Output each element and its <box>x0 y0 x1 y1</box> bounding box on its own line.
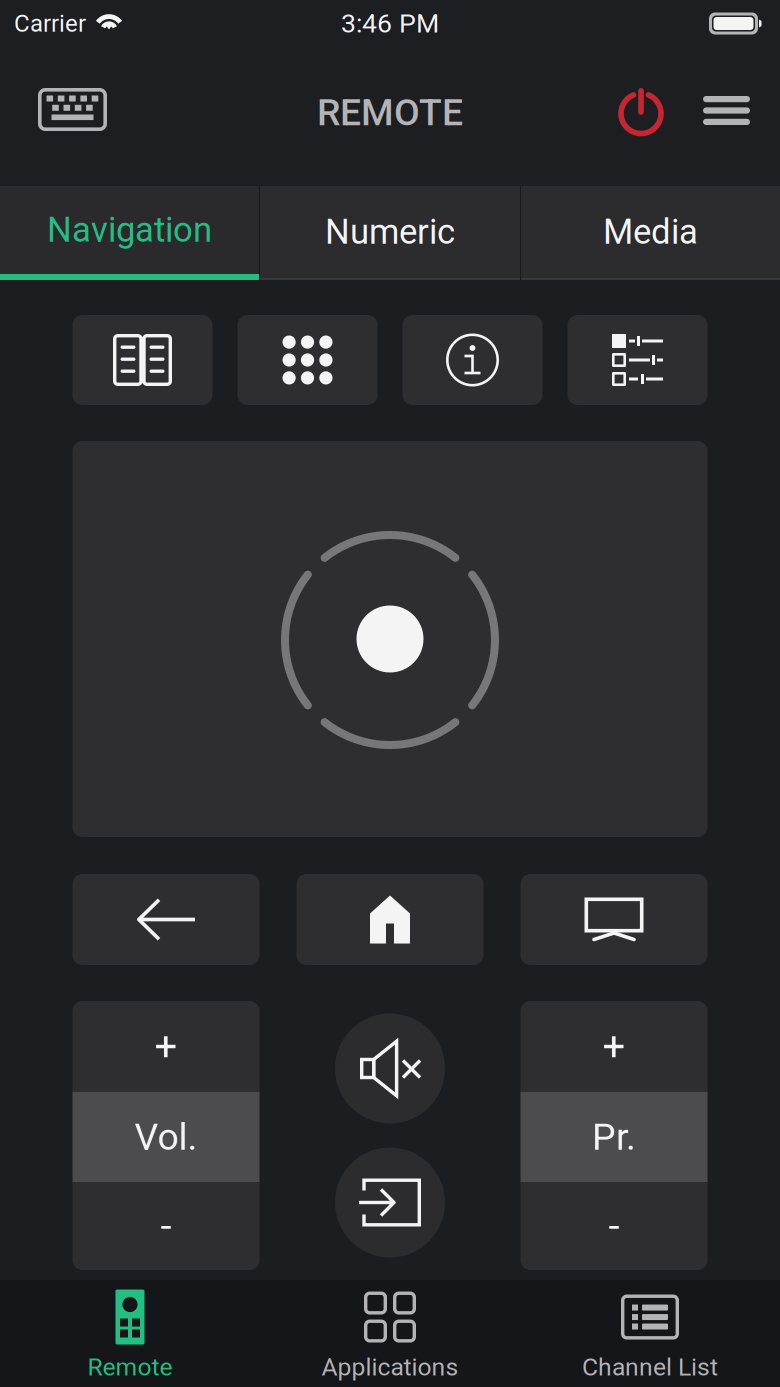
staticText: 3:46 PM <box>341 8 439 39</box>
button[interactable]: Source input <box>335 1147 445 1257</box>
staticText: - <box>608 1203 619 1249</box>
staticText: REMOTE <box>317 91 463 134</box>
staticText: Applications <box>321 1352 458 1381</box>
button[interactable]: - <box>72 1182 259 1270</box>
button[interactable]: Options <box>567 315 707 405</box>
button[interactable]: Home <box>296 874 483 965</box>
button[interactable]: - <box>520 1182 707 1270</box>
button[interactable]: Source <box>520 874 707 965</box>
button[interactable]: Info <box>402 315 542 405</box>
staticText: Pr. <box>592 1115 636 1159</box>
button[interactable]: + <box>72 1001 259 1092</box>
staticText: Channel List <box>582 1352 718 1381</box>
button[interactable]: Guide <box>72 315 212 405</box>
button[interactable]: Mute <box>335 1013 445 1123</box>
button[interactable]: Menu <box>673 47 772 186</box>
button[interactable]: Navigation <box>0 186 259 280</box>
staticText: Vol. <box>134 1115 197 1159</box>
button[interactable]: Power <box>589 47 673 186</box>
staticText: Numeric <box>325 212 455 252</box>
staticText: Carrier <box>14 9 86 37</box>
button[interactable]: Directional pad <box>72 441 707 837</box>
button[interactable]: Channel List <box>520 1280 780 1387</box>
button[interactable]: Pr. <box>520 1092 707 1182</box>
button[interactable]: Keypad <box>237 315 377 405</box>
button[interactable]: Applications <box>260 1280 520 1387</box>
staticText: + <box>154 1023 177 1070</box>
button[interactable]: Remote <box>0 1280 260 1387</box>
staticText: Navigation <box>47 210 212 250</box>
button[interactable]: Media <box>521 186 780 280</box>
staticText: + <box>602 1023 625 1070</box>
staticText: Media <box>603 212 698 252</box>
button[interactable]: + <box>520 1001 707 1092</box>
button[interactable]: Numeric <box>260 186 520 280</box>
button[interactable]: Keyboard <box>22 73 123 160</box>
button[interactable]: Back <box>72 874 259 965</box>
button[interactable]: Vol. <box>72 1092 259 1182</box>
staticText: Remote <box>87 1352 172 1381</box>
staticText: - <box>160 1203 171 1249</box>
